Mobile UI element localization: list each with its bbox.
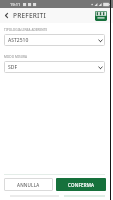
staticText: PREFERITI: [13, 11, 46, 20]
staticText: MODO MISURA: [4, 55, 27, 59]
staticText: AST2510: [8, 37, 29, 44]
button[interactable]: ANNULLA: [4, 178, 53, 191]
button[interactable]: SDF: [4, 61, 105, 73]
staticText: SDF: [8, 64, 18, 71]
staticText: 19:11: [10, 2, 21, 7]
button[interactable]: App logo: [95, 10, 107, 22]
staticText: CONFERMA: [68, 182, 95, 188]
button[interactable]: AST2510: [4, 34, 105, 46]
button[interactable]: CONFERMA: [56, 178, 106, 191]
button[interactable]: Back: [1, 10, 12, 21]
staticText: ANNULLA: [17, 182, 40, 188]
staticText: TIPOLOGIA LINEA ADERENTE: [4, 28, 48, 32]
